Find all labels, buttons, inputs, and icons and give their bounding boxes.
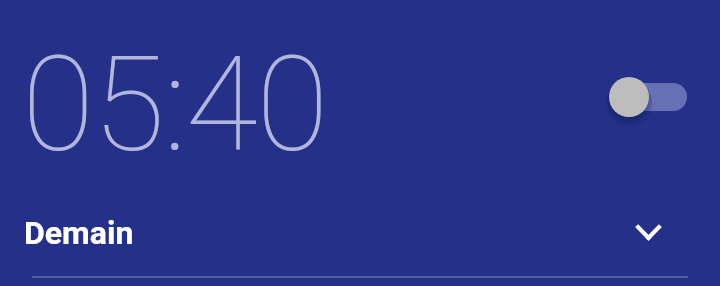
staticText: 05:40 bbox=[22, 28, 327, 183]
button[interactable]: Toggle alarm bbox=[593, 69, 687, 125]
staticText: Demain bbox=[24, 214, 134, 252]
button[interactable]: 05:40 bbox=[0, 0, 720, 193]
button[interactable]: Demain bbox=[0, 194, 720, 271]
button[interactable]: Expand alarm details bbox=[628, 212, 668, 252]
